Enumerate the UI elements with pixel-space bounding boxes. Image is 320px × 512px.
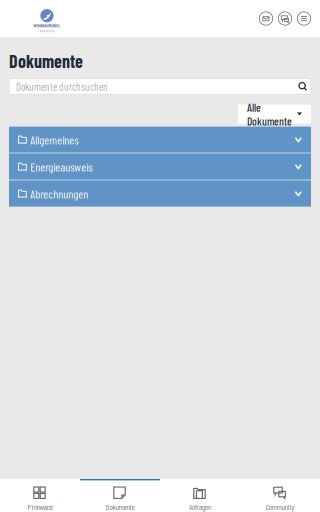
button[interactable]: Chat [278,11,292,25]
staticText: Alle Dokumente [247,100,292,128]
staticText: Dokumente durchsuchen [16,80,108,93]
staticText: Dokumente [105,502,134,512]
button[interactable]: Dokumente [80,479,160,512]
staticText: Pinnwand [27,502,52,512]
button[interactable]: Abrechnungen [9,181,311,207]
staticText: WOHNRAUMENGEL [33,23,60,28]
button[interactable]: Pinnwand [0,479,80,512]
button[interactable]: Nachrichten [259,11,273,25]
staticText: Energieausweis [30,159,92,174]
button[interactable]: Energieausweis [9,154,311,180]
button[interactable]: Anfragen [160,479,240,512]
staticText: Community [265,502,294,512]
button[interactable]: Allgemeines [9,127,311,153]
staticText: Abrechnungen [30,186,88,201]
staticText: Dokumente [9,50,83,72]
button[interactable]: Alle Dokumente [238,105,311,124]
staticText: Anfragen [189,502,211,512]
staticText: Allgemeines [30,132,78,147]
staticText: Hausverwaltung [39,29,54,33]
button[interactable]: Community [240,479,320,512]
button[interactable]: Menü [297,11,311,25]
